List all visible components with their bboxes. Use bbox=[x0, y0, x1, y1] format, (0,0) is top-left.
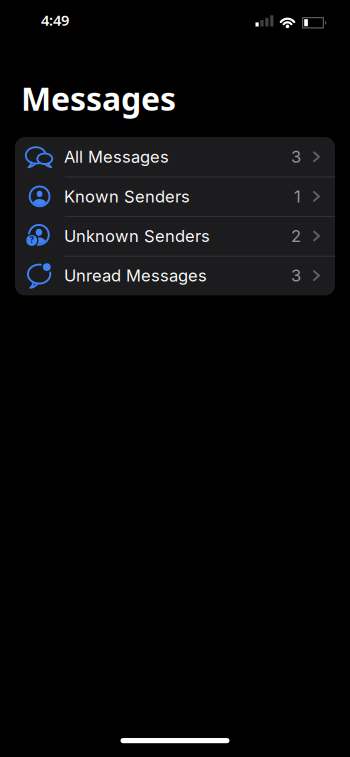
staticText: 4:49 bbox=[41, 10, 69, 30]
staticText: Unknown Senders bbox=[64, 226, 210, 246]
staticText: Known Senders bbox=[64, 186, 190, 206]
staticText: 2 bbox=[291, 226, 301, 246]
staticText: 3 bbox=[291, 266, 301, 286]
button[interactable]: Unread Messages bbox=[15, 256, 335, 295]
staticText: Messages bbox=[21, 77, 176, 119]
button[interactable]: Home bbox=[120, 738, 229, 743]
button[interactable]: Known Senders bbox=[15, 177, 335, 216]
button[interactable]: All Messages bbox=[15, 137, 335, 177]
staticText: All Messages bbox=[64, 147, 169, 167]
staticText: Unread Messages bbox=[64, 266, 207, 286]
button[interactable]: ? bbox=[15, 216, 335, 256]
staticText: ? bbox=[30, 235, 35, 245]
staticText: 1 bbox=[294, 186, 301, 206]
staticText: 3 bbox=[291, 147, 301, 167]
